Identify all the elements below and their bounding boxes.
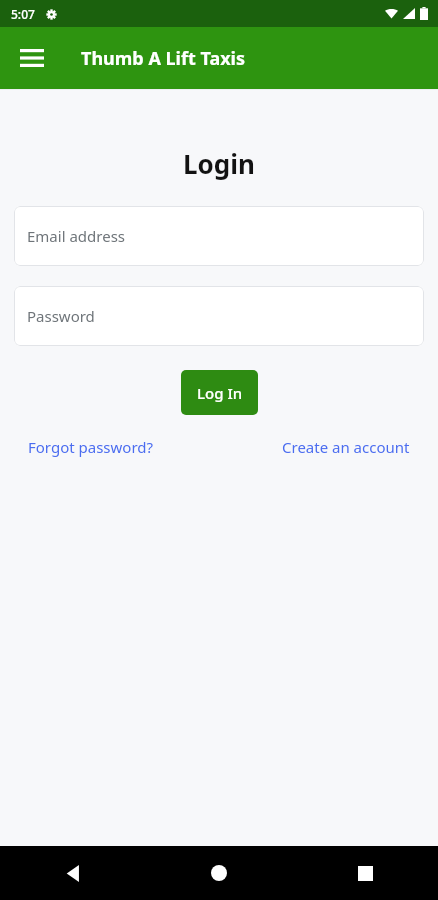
staticText: Forgot password? — [28, 437, 154, 457]
button[interactable]: Open navigation menu — [10, 36, 54, 80]
staticText: Create an account — [282, 437, 410, 457]
button[interactable]: Recent apps — [292, 846, 438, 900]
staticText: Password — [27, 306, 95, 326]
button[interactable]: Forgot password? — [14, 433, 168, 461]
staticText: Email address — [27, 226, 126, 246]
button[interactable]: Home — [146, 846, 292, 900]
button[interactable]: Create an account — [268, 433, 424, 461]
staticText: 5:07 — [11, 6, 35, 22]
button[interactable]: Email address — [14, 206, 424, 266]
staticText: Thumb A Lift Taxis — [81, 46, 245, 71]
button[interactable]: Back — [0, 846, 146, 900]
button[interactable]: Password — [14, 286, 424, 346]
staticText: Log In — [197, 383, 243, 403]
staticText: Login — [0, 146, 438, 181]
button[interactable]: Log In — [181, 370, 258, 415]
